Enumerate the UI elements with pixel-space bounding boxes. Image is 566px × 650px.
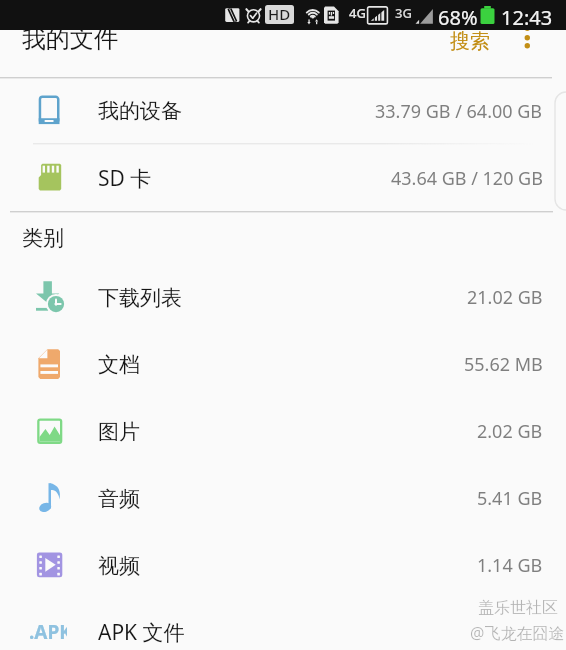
staticText: 音频 [98,486,140,512]
staticText: 3G [395,4,412,22]
button[interactable]: 文档 [0,330,566,397]
button[interactable]: 音频 [0,464,566,531]
staticText: SD 卡 [98,164,152,193]
staticText: 文档 [98,352,140,378]
staticText: 图片 [98,419,140,445]
staticText: 4G [349,4,366,22]
button[interactable]: 我的设备 [0,77,566,143]
staticText: 68% [438,4,478,31]
button[interactable]: .APK [0,598,566,650]
staticText: 33.79 GB / 64.00 GB [375,99,543,124]
staticText: 视频 [98,553,140,579]
staticText: 21.02 GB [467,285,543,310]
staticText: 12:43 [501,4,553,31]
staticText: APK 文件 [98,618,185,647]
button[interactable]: 下载列表 [0,263,566,330]
staticText: 类别 [22,225,64,251]
staticText: 盖乐世社区 [478,598,558,618]
staticText: HD [268,4,291,23]
staticText: 搜索 [450,29,490,54]
button[interactable]: SD 卡 [0,144,566,210]
staticText: 我的文件 [22,24,118,54]
button[interactable]: More options [511,22,544,55]
staticText: 5.41 GB [477,486,543,511]
staticText: 43.64 GB / 120 GB [391,166,543,191]
staticText: 我的设备 [98,98,182,124]
button[interactable]: 视频 [0,531,566,598]
button[interactable]: 图片 [0,397,566,464]
staticText: 下载列表 [98,285,182,311]
staticText: 55.62 MB [464,352,543,377]
button[interactable]: 我的文件 [22,28,118,58]
staticText: .APK [29,619,67,645]
button[interactable]: 搜索 [450,32,490,57]
staticText: @飞龙在囧途 [470,622,565,644]
staticText: 2.02 GB [477,419,543,444]
staticText: 1.14 GB [477,553,543,578]
